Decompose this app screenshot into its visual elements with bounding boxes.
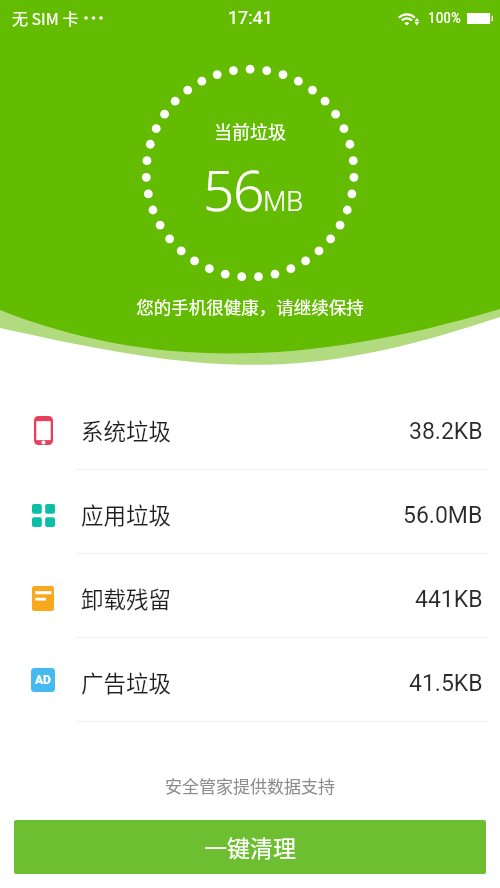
staticText: 441KB: [415, 586, 483, 613]
staticText: 系统垃圾: [81, 414, 172, 447]
staticText: 56.0MB: [403, 502, 483, 529]
other: Battery full: [467, 13, 493, 24]
staticText: 56: [203, 152, 263, 227]
staticText: MB: [263, 182, 303, 219]
staticText: 100%: [428, 9, 461, 27]
staticText: AD: [35, 673, 51, 687]
staticText: 安全管家提供数据支持: [165, 773, 335, 798]
button[interactable]: 一键清理: [14, 820, 486, 874]
staticText: 41.5KB: [409, 670, 483, 697]
staticText: 当前垃圾: [0, 118, 500, 144]
button[interactable]: 系统垃圾: [0, 386, 500, 469]
staticText: 应用垃圾: [81, 498, 172, 531]
staticText: 您的手机很健康，请继续保持: [0, 294, 500, 319]
button[interactable]: AD: [0, 638, 500, 721]
staticText: 一键清理: [204, 830, 296, 863]
button[interactable]: 应用垃圾: [0, 470, 500, 553]
staticText: 无 SIM 卡: [12, 6, 79, 29]
staticText: 卸载残留: [81, 582, 172, 615]
staticText: 广告垃圾: [81, 666, 172, 699]
button[interactable]: 卸载残留: [0, 554, 500, 637]
staticText: 17:41: [228, 7, 273, 28]
staticText: 38.2KB: [409, 418, 483, 445]
other: Wi-Fi: [398, 10, 420, 26]
